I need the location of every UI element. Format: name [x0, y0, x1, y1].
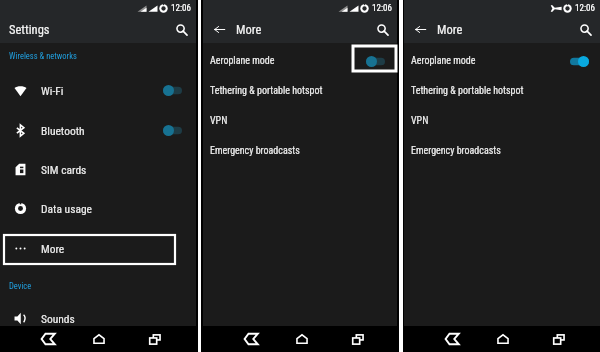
- staticText: Aeroplane mode: [210, 55, 275, 67]
- staticText: Bluetooth: [41, 124, 85, 137]
- staticText: 12:06: [575, 3, 595, 14]
- staticText: Sounds: [41, 312, 75, 325]
- button[interactable]: Back: [242, 326, 260, 352]
- button[interactable]: Back: [39, 326, 57, 352]
- button[interactable]: Data usage: [0, 189, 196, 228]
- staticText: More: [236, 22, 262, 37]
- button[interactable]: Aeroplane mode: [404, 46, 600, 76]
- button[interactable]: Navigate up: [203, 16, 236, 43]
- staticText: Emergency broadcasts: [411, 145, 501, 157]
- staticText: Emergency broadcasts: [210, 145, 300, 157]
- button[interactable]: Recent apps: [349, 326, 367, 352]
- staticText: 12:06: [372, 3, 392, 14]
- button[interactable]: Sounds: [0, 298, 196, 338]
- button[interactable]: VPN: [203, 106, 397, 136]
- button[interactable]: Tethering & portable hotspot: [404, 76, 600, 106]
- button[interactable]: VPN: [404, 106, 600, 136]
- button[interactable]: Emergency broadcasts: [404, 136, 600, 166]
- button[interactable]: More: [0, 228, 196, 269]
- button[interactable]: Home: [293, 326, 311, 352]
- staticText: SIM cards: [41, 163, 87, 176]
- staticText: Data usage: [41, 202, 92, 215]
- staticText: Tethering & portable hotspot: [210, 85, 323, 97]
- staticText: More: [437, 22, 463, 37]
- button[interactable]: Home: [494, 326, 512, 352]
- button[interactable]: Recent apps: [146, 326, 164, 352]
- button[interactable]: Recent apps: [550, 326, 568, 352]
- staticText: VPN: [411, 115, 429, 127]
- staticText: VPN: [210, 115, 228, 127]
- button[interactable]: SIM cards: [0, 150, 196, 189]
- button[interactable]: Navigate up: [404, 16, 437, 43]
- staticText: Aeroplane mode: [411, 55, 476, 67]
- button[interactable]: Bluetooth: [0, 110, 196, 150]
- button[interactable]: Search: [572, 16, 600, 43]
- button[interactable]: Aeroplane mode: [203, 46, 397, 76]
- button[interactable]: Home: [90, 326, 108, 352]
- staticText: Wireless & networks: [9, 51, 77, 61]
- staticText: More: [41, 242, 65, 255]
- staticText: Tethering & portable hotspot: [411, 85, 524, 97]
- button[interactable]: Search: [369, 16, 397, 43]
- button[interactable]: Emergency broadcasts: [203, 136, 397, 166]
- staticText: Device: [9, 281, 32, 291]
- button[interactable]: Back: [443, 326, 461, 352]
- button[interactable]: Search: [168, 16, 196, 43]
- button[interactable]: Wi-Fi: [0, 70, 196, 110]
- staticText: 12:06: [171, 3, 191, 14]
- button[interactable]: Tethering & portable hotspot: [203, 76, 397, 106]
- staticText: Settings: [9, 22, 50, 37]
- staticText: Wi-Fi: [41, 84, 64, 97]
